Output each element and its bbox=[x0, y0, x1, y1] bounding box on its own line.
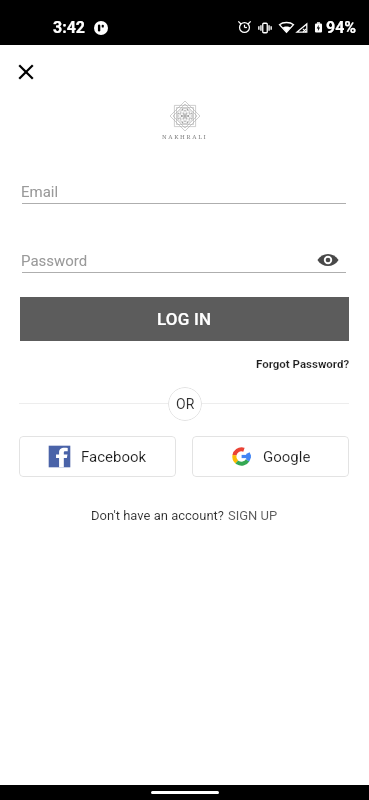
button[interactable]: LOG IN bbox=[20, 297, 349, 341]
button[interactable]: Facebook bbox=[19, 436, 176, 477]
button[interactable]: Close bbox=[12, 58, 40, 86]
staticText: Email bbox=[21, 183, 59, 201]
staticText: 94% bbox=[326, 18, 357, 37]
staticText: LOG IN bbox=[157, 309, 212, 329]
staticText: OR bbox=[176, 396, 195, 412]
button[interactable]: SIGN UP bbox=[228, 508, 278, 523]
staticText: NAKHRALI bbox=[162, 133, 208, 141]
staticText: Don't have an account? bbox=[91, 508, 228, 523]
staticText: Password bbox=[21, 252, 88, 270]
button[interactable]: Show password bbox=[313, 245, 342, 274]
staticText: SIGN UP bbox=[228, 508, 278, 523]
staticText: Forgot Password? bbox=[256, 357, 350, 370]
staticText: 3:42 bbox=[53, 18, 86, 37]
button[interactable]: Forgot Password? bbox=[254, 355, 352, 372]
button[interactable]: Google bbox=[192, 436, 349, 477]
staticText: Facebook bbox=[81, 448, 147, 466]
staticText: Google bbox=[263, 448, 311, 466]
